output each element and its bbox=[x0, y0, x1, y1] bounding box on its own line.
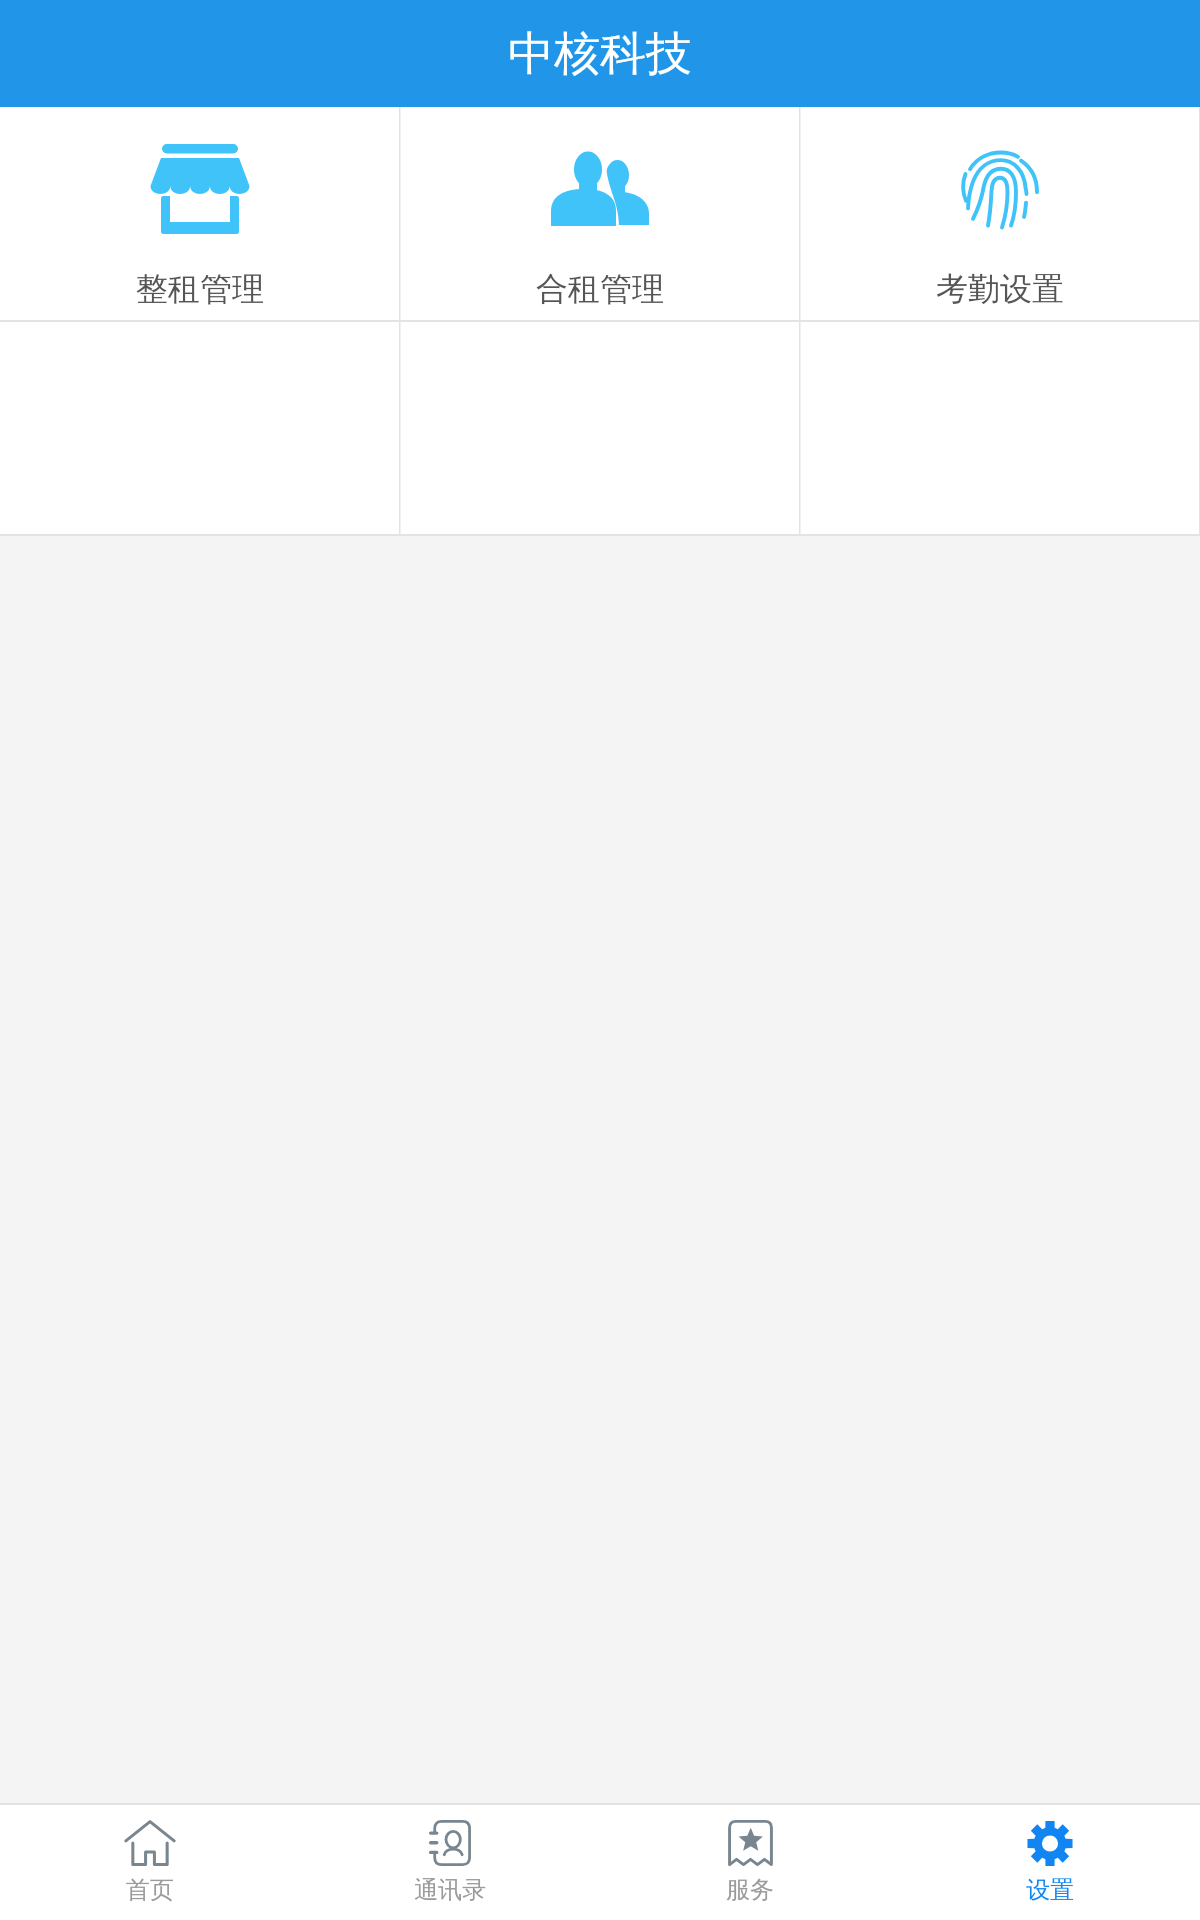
staticText: 整租管理 bbox=[136, 269, 264, 309]
button[interactable]: 设置 bbox=[900, 1805, 1200, 1920]
button[interactable]: 通讯录 bbox=[300, 1805, 600, 1920]
staticText: 中核科技 bbox=[508, 25, 692, 83]
staticText: 考勤设置 bbox=[936, 269, 1064, 309]
button[interactable]: 首页 bbox=[0, 1805, 300, 1920]
other: 整租管理 bbox=[150, 144, 250, 244]
staticText: 合租管理 bbox=[536, 269, 664, 309]
button[interactable]: 整租管理 bbox=[0, 107, 400, 320]
button[interactable]: 考勤设置 bbox=[800, 107, 1200, 320]
staticText: 首页 bbox=[126, 1875, 174, 1905]
button[interactable]: 合租管理 bbox=[400, 107, 800, 320]
button[interactable]: 服务 bbox=[600, 1805, 900, 1920]
staticText: 服务 bbox=[726, 1875, 774, 1905]
staticText: 设置 bbox=[1026, 1875, 1074, 1905]
other: 通讯录 bbox=[424, 1820, 476, 1866]
other: 服务 bbox=[724, 1820, 776, 1866]
other: 首页 bbox=[124, 1820, 176, 1866]
other: 设置 bbox=[1024, 1820, 1076, 1866]
other: 考勤设置 bbox=[950, 144, 1050, 244]
other: 合租管理 bbox=[550, 144, 650, 244]
staticText: 通讯录 bbox=[414, 1875, 486, 1905]
